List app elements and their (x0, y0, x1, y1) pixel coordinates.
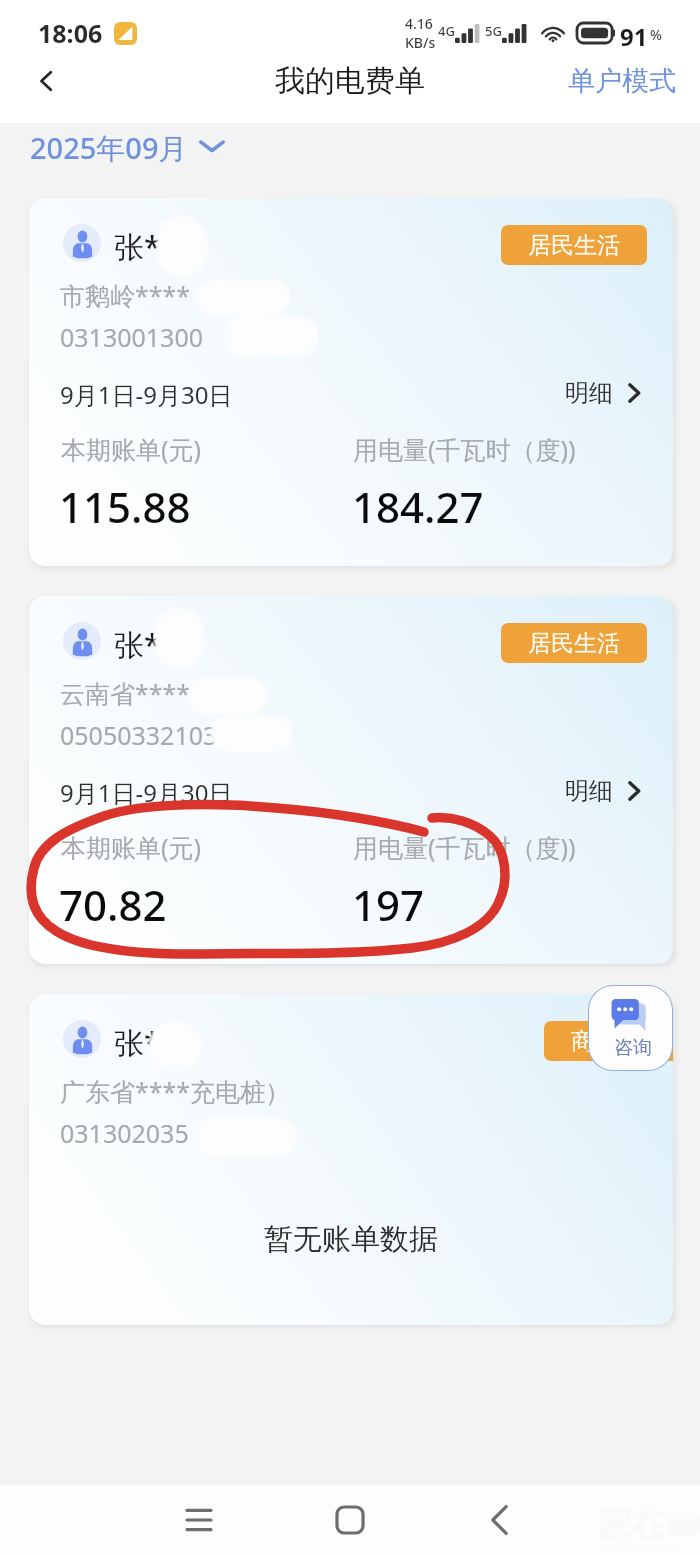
staticText: 张* (114, 624, 161, 665)
button[interactable]: 张* (29, 994, 673, 1325)
button[interactable]: 明细 (559, 772, 647, 810)
staticText: 用电量(千瓦时（度)) (353, 432, 576, 466)
staticText: 05050332103 (60, 718, 218, 752)
staticText: 4.16 (405, 14, 433, 33)
staticText: 市鹅岭**** (60, 278, 191, 312)
staticText: 2025年09月 (30, 128, 188, 163)
staticText: 张* (114, 226, 161, 267)
button[interactable]: 居民生活 (501, 623, 647, 663)
staticText: 广东省****充电桩） (60, 1074, 291, 1108)
staticText: % (650, 25, 662, 44)
staticText: 9月1日-9月30日 (60, 378, 233, 411)
button[interactable]: 居民生活 (501, 225, 647, 265)
staticText: 91 (620, 20, 648, 46)
staticText: 197 (352, 876, 425, 933)
button[interactable]: Back (17, 52, 75, 110)
button[interactable]: 商业用电 (544, 1021, 673, 1061)
button[interactable]: 明细 (559, 374, 647, 412)
staticText: 我的电费单 (275, 62, 425, 100)
button[interactable]: Recents (169, 1490, 229, 1550)
staticText: 本期账单(元) (61, 830, 202, 864)
staticText: 用电量(千瓦时（度)) (353, 830, 576, 864)
staticText: 云南省**** (60, 676, 191, 710)
staticText: 0313001300 (60, 320, 204, 354)
staticText: 9月1日-9月30日 (60, 776, 233, 809)
staticText: 暂无账单数据 (264, 1221, 438, 1258)
staticText: 张* (114, 1022, 161, 1063)
button[interactable]: 2025年09月 (26, 123, 230, 168)
staticText: 115.88 (59, 478, 191, 535)
button[interactable]: Consult (589, 986, 672, 1070)
staticText: 18:06 (38, 16, 103, 50)
button[interactable]: 单户模式 (564, 56, 680, 106)
staticText: 居民生活 (528, 629, 620, 658)
staticText: 咨询 (614, 1036, 652, 1060)
staticText: 70.82 (59, 876, 167, 933)
staticText: 商业用电 (571, 1027, 663, 1056)
staticText: 明细 (565, 378, 613, 408)
button[interactable]: 张* (29, 596, 673, 964)
staticText: 4G (438, 22, 455, 40)
staticText: 031302035 (60, 1116, 189, 1150)
staticText: 本期账单(元) (61, 432, 202, 466)
staticText: 明细 (565, 776, 613, 806)
button[interactable]: Home (320, 1490, 380, 1550)
button[interactable]: 张* (29, 198, 673, 566)
staticText: 184.27 (352, 478, 484, 535)
staticText: KB/s (405, 33, 436, 52)
button[interactable]: Back (469, 1490, 529, 1550)
staticText: 居民生活 (528, 231, 620, 260)
staticText: 5G (485, 22, 502, 40)
staticText: 单户模式 (568, 64, 676, 98)
